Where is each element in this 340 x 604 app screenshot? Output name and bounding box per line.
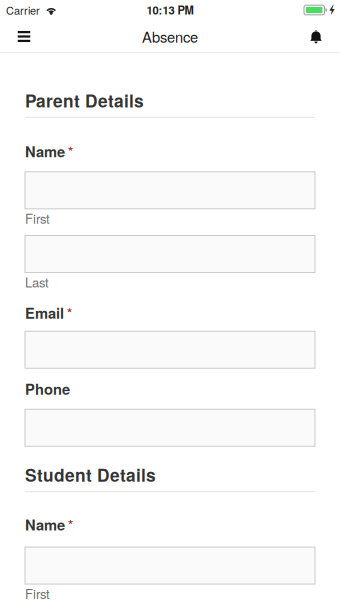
button[interactable]: Text field — [25, 547, 315, 584]
staticText: * — [68, 515, 73, 534]
staticText: First — [25, 209, 50, 227]
button[interactable]: Text field — [25, 172, 315, 209]
staticText: First — [25, 584, 50, 603]
staticText: Email — [25, 302, 64, 323]
staticText: Last — [25, 272, 49, 291]
staticText: Absence — [142, 26, 198, 47]
staticText: Carrier — [6, 2, 40, 18]
staticText: 10:13 PM — [146, 2, 193, 18]
staticText: Student Details — [25, 462, 156, 487]
staticText: Phone — [25, 378, 70, 399]
staticText: Name — [25, 514, 65, 535]
staticText: Name — [25, 141, 65, 162]
staticText: * — [67, 303, 72, 322]
staticText: Parent Details — [25, 88, 144, 113]
button[interactable]: Text field — [25, 409, 315, 446]
button[interactable]: Menu — [2, 20, 46, 53]
button[interactable]: Notifications — [294, 20, 338, 53]
button[interactable]: Text field — [25, 331, 315, 368]
staticText: * — [68, 142, 73, 161]
